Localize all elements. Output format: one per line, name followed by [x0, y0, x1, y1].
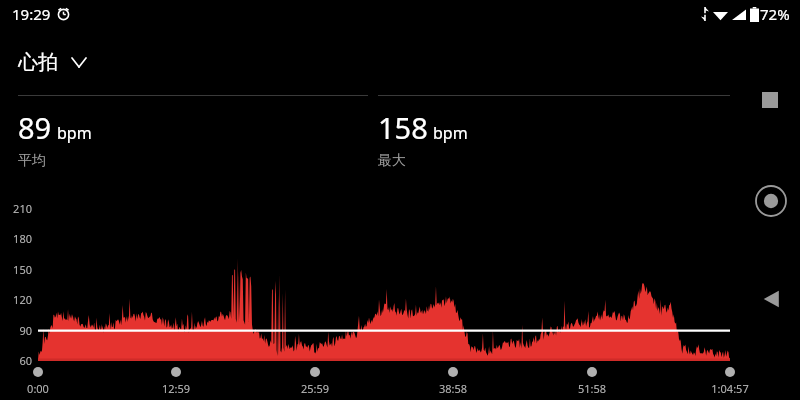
staticText: 12:59: [142, 381, 210, 396]
staticText: 心拍: [18, 50, 58, 75]
staticText: 72%: [760, 4, 790, 24]
staticText: 0:00: [4, 381, 72, 396]
staticText: 89: [18, 108, 52, 147]
staticText: 51:58: [558, 381, 626, 396]
staticText: 120: [6, 292, 32, 307]
button[interactable]: 心拍: [18, 48, 94, 77]
staticText: 210: [6, 201, 32, 216]
staticText: 19:29: [12, 4, 51, 24]
staticText: 180: [6, 231, 32, 246]
staticText: 150: [6, 262, 32, 277]
button[interactable]: Home: [754, 184, 788, 218]
staticText: bpm: [433, 122, 468, 144]
staticText: 25:59: [281, 381, 349, 396]
staticText: 1:04:57: [696, 381, 764, 396]
staticText: 38:58: [419, 381, 487, 396]
staticText: 平均: [18, 152, 46, 170]
staticText: 60: [6, 353, 32, 368]
staticText: 158: [378, 108, 428, 147]
staticText: bpm: [57, 122, 92, 144]
other: Expand: [72, 58, 86, 67]
staticText: 90: [6, 323, 32, 338]
button[interactable]: Back: [758, 286, 784, 312]
staticText: 最大: [378, 152, 406, 170]
